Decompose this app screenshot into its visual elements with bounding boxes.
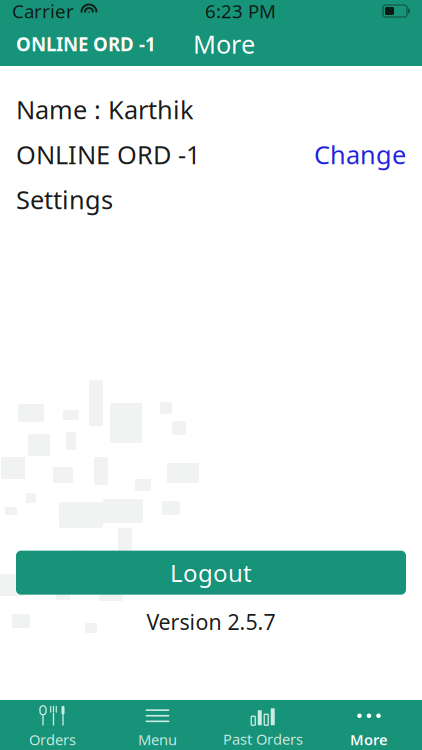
staticText: 6:23 PM (205, 0, 276, 23)
button[interactable]: Menu (105, 700, 210, 750)
staticText: More (193, 27, 255, 61)
button[interactable]: Past Orders (210, 700, 316, 750)
button[interactable]: Orders (0, 700, 105, 750)
staticText: Menu (138, 730, 177, 749)
button[interactable]: Logout (16, 551, 406, 595)
staticText: Change (314, 138, 406, 171)
button[interactable]: ONLINE ORD -1 (0, 22, 172, 66)
staticText: More (350, 730, 388, 749)
staticText: Logout (170, 557, 252, 589)
staticText: Settings (16, 183, 113, 216)
staticText: Version 2.5.7 (146, 608, 275, 636)
staticText: Past Orders (223, 729, 303, 749)
staticText: Orders (29, 730, 76, 749)
staticText: ONLINE ORD -1 (16, 32, 156, 56)
staticText: Carrier (12, 0, 74, 23)
button[interactable]: Settings (0, 177, 422, 222)
button[interactable]: Name : Karthik (0, 87, 422, 132)
staticText: ONLINE ORD -1 (16, 138, 200, 171)
button[interactable]: More (316, 700, 422, 750)
staticText: Name : Karthik (16, 93, 194, 126)
button[interactable]: ONLINE ORD -1 (0, 132, 422, 177)
